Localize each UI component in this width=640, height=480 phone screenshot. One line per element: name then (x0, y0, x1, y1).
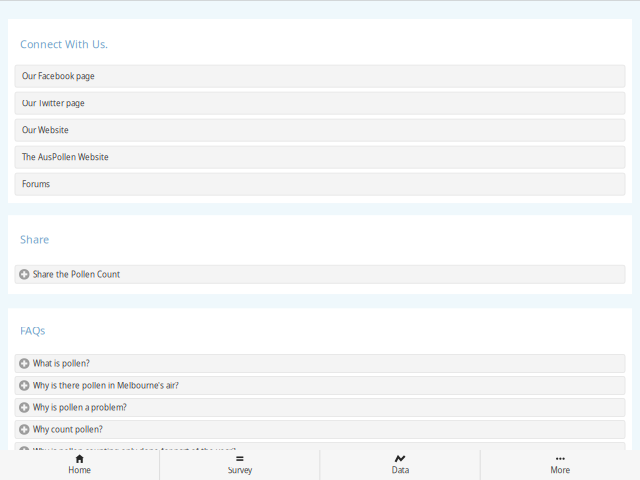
button[interactable]: Forums (15, 173, 625, 195)
button[interactable]: What can I do about my hay fever? (15, 464, 625, 480)
button[interactable]: Data (320, 450, 480, 480)
staticText: Home (68, 465, 91, 475)
staticText: Share the Pollen Count (33, 269, 120, 280)
staticText: Why is pollen counting only done for par… (33, 446, 235, 457)
button[interactable]: Home (0, 450, 159, 480)
staticText: FAQs (20, 323, 45, 337)
button[interactable]: Why is there pollen in Melbourne's air? (15, 376, 625, 394)
button[interactable]: Survey (160, 450, 319, 480)
staticText: What is pollen? (33, 358, 89, 369)
staticText: Why is pollen a problem? (33, 402, 126, 413)
button[interactable]: Our Twitter page (15, 92, 625, 114)
staticText: More (550, 465, 570, 475)
staticText: Our Website (22, 125, 69, 135)
staticText: Data (392, 465, 409, 475)
staticText: Share (20, 232, 49, 246)
button[interactable]: Our Website (15, 119, 625, 141)
staticText: Forums (22, 179, 50, 189)
staticText: The AusPollen Website (22, 152, 109, 162)
button[interactable]: Why is pollen counting only done for par… (15, 442, 625, 460)
button[interactable]: Why is pollen a problem? (15, 398, 625, 416)
staticText: What can I do about my hay fever? (33, 468, 160, 479)
button[interactable]: The AusPollen Website (15, 146, 625, 168)
button[interactable]: Share the Pollen Count (15, 265, 625, 283)
staticText: Connect With Us. (20, 37, 108, 51)
button[interactable]: Our Facebook page (15, 65, 625, 87)
button[interactable]: Why count pollen? (15, 420, 625, 438)
button[interactable]: More (481, 450, 640, 480)
button[interactable]: What is pollen? (15, 354, 625, 372)
staticText: Why count pollen? (33, 424, 102, 435)
staticText: Our Twitter page (22, 98, 85, 108)
staticText: Our Facebook page (22, 71, 95, 81)
staticText: Why is there pollen in Melbourne's air? (33, 380, 178, 391)
staticText: Survey (228, 465, 252, 475)
